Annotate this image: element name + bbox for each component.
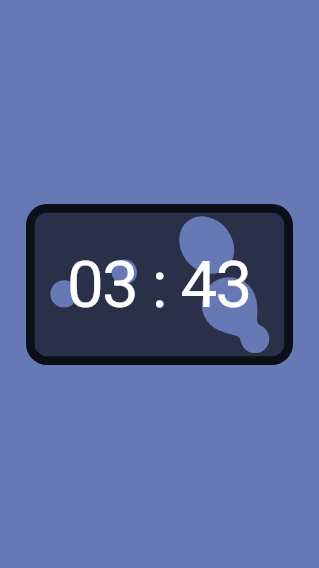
button[interactable]: Timer 03:43 xyxy=(26,204,293,365)
staticText: 03 : 43 xyxy=(67,246,251,323)
